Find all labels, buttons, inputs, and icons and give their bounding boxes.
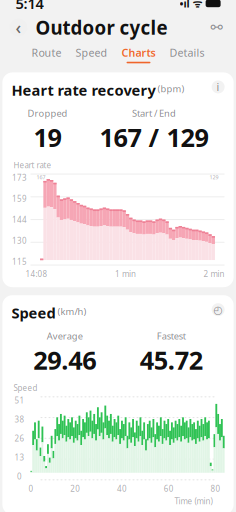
staticText: (km/h) — [55, 305, 86, 318]
staticText: ‹ — [15, 16, 21, 39]
button[interactable]: Charts — [117, 45, 159, 63]
button[interactable]: Information — [212, 80, 225, 93]
staticText: Outdoor cycle — [35, 15, 167, 40]
staticText: •ıl — [180, 0, 190, 10]
staticText: ⚯ — [211, 19, 223, 36]
staticText: 159 — [12, 193, 27, 204]
staticText: 0 — [28, 483, 33, 494]
staticText: 60 — [164, 483, 174, 494]
staticText: ◴ — [214, 304, 223, 316]
staticText: ᯤ — [193, 0, 203, 10]
staticText: Fastest — [157, 330, 186, 342]
staticText: 0 — [17, 471, 22, 482]
staticText: 29.46 — [33, 343, 96, 377]
staticText: Start / End — [132, 107, 176, 119]
staticText: 80 — [211, 483, 221, 494]
staticText: 19 — [33, 120, 61, 154]
button[interactable]: Speed — [71, 45, 111, 63]
staticText: i — [217, 80, 220, 94]
button[interactable]: Details — [165, 45, 208, 63]
button[interactable]: Route — [27, 45, 65, 63]
button[interactable]: Route — [207, 17, 227, 37]
staticText: (bpm) — [155, 82, 184, 95]
staticText: Heart rate — [13, 160, 51, 170]
staticText: 38 — [14, 414, 24, 425]
button[interactable]: Expand chart — [212, 303, 225, 316]
staticText: 1 min — [115, 269, 136, 279]
staticText: Route — [31, 45, 61, 60]
staticText: Speed — [75, 45, 107, 60]
staticText: 2 min — [204, 269, 225, 279]
staticText: Speed — [11, 303, 55, 323]
staticText: Details — [169, 45, 204, 60]
staticText: Dropped — [27, 107, 67, 119]
staticText: 14:08 — [25, 269, 47, 279]
staticText: Average — [47, 330, 83, 342]
staticText: Time (min) — [175, 496, 213, 506]
staticText: 51 — [14, 395, 24, 406]
staticText: Heart rate recovery — [11, 80, 155, 100]
staticText: 45.72 — [140, 343, 203, 377]
staticText: 167 — [36, 174, 45, 181]
staticText: 115 — [12, 256, 27, 267]
staticText: 20 — [70, 483, 80, 494]
staticText: Charts — [121, 45, 155, 60]
staticText: 129 — [210, 174, 219, 181]
staticText: 13 — [14, 452, 24, 463]
staticText: 26 — [14, 433, 24, 444]
staticText: 130 — [12, 235, 27, 246]
staticText: 40 — [117, 483, 127, 494]
button[interactable]: Back — [9, 18, 27, 36]
staticText: 173 — [12, 172, 27, 183]
staticText: 5:14 — [15, 0, 43, 13]
staticText: 144 — [12, 214, 27, 225]
staticText: Speed — [13, 383, 37, 393]
staticText: 167 / 129 — [100, 120, 209, 154]
